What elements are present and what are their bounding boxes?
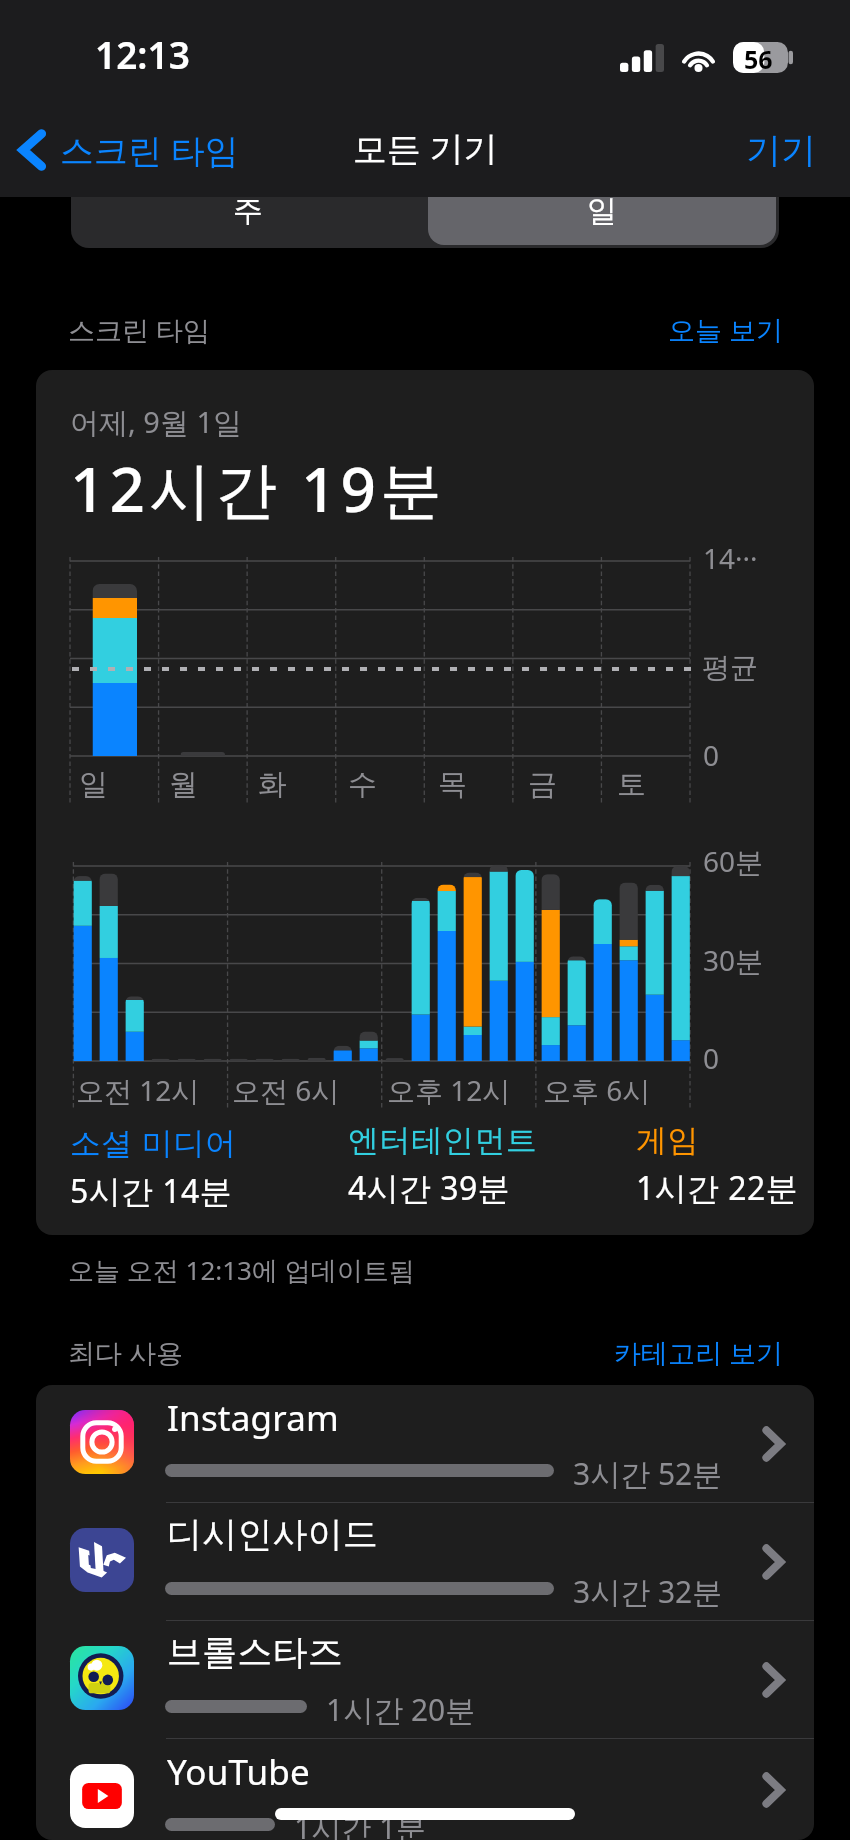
staticText: 토 [617, 766, 646, 803]
staticText: 1시간 22분 [636, 1166, 799, 1210]
staticText: 1시간 1분 [294, 1807, 427, 1840]
button[interactable]: 디시인사이드 [36, 1503, 814, 1620]
staticText: 금 [528, 766, 557, 803]
staticText: 월 [169, 766, 198, 803]
staticText: 14··· [703, 539, 758, 577]
button[interactable]: 오늘 보기 [668, 311, 784, 348]
other: 뒤로 [16, 126, 48, 174]
staticText: 오전 12시 [76, 1071, 200, 1109]
staticText: 스크린 타임 [60, 127, 239, 173]
staticText: 12시간 19분 [70, 446, 446, 531]
staticText: 일 [79, 766, 108, 803]
staticText: 수 [348, 766, 377, 803]
button[interactable]: 일 [428, 165, 776, 245]
staticText: 평균 [702, 650, 758, 685]
button[interactable]: YouTube [36, 1739, 814, 1840]
staticText: 4시간 39분 [348, 1166, 511, 1210]
staticText: 게임 [636, 1121, 700, 1160]
staticText: 디시인사이드 [167, 1512, 379, 1556]
staticText: 스크린 타임 [68, 311, 211, 348]
staticText: 어제, 9월 1일 [70, 402, 243, 442]
staticText: 엔터테인먼트 [348, 1121, 538, 1160]
staticText: 모든 기기 [353, 125, 498, 171]
staticText: 오후 12시 [387, 1071, 511, 1109]
button[interactable]: 주 [71, 162, 425, 248]
staticText: 3시간 52분 [573, 1453, 723, 1494]
staticText: Instagram [167, 1394, 339, 1442]
staticText: 화 [258, 766, 287, 803]
staticText: YouTube [167, 1748, 310, 1796]
button[interactable]: 카테고리 보기 [614, 1334, 784, 1371]
staticText: 오후 6시 [543, 1071, 651, 1109]
staticText: 30분 [703, 941, 764, 979]
staticText: 3시간 32분 [573, 1571, 723, 1612]
button[interactable]: Instagram [36, 1385, 814, 1502]
staticText: 목 [438, 766, 467, 803]
staticText: 12:13 [95, 29, 190, 79]
staticText: 최다 사용 [68, 1334, 184, 1371]
staticText: 소셜 미디어 [70, 1121, 237, 1163]
staticText: 0 [703, 1039, 720, 1077]
staticText: 오전 6시 [232, 1071, 340, 1109]
staticText: 일 [587, 192, 617, 230]
button[interactable]: 브롤스타즈 [36, 1621, 814, 1738]
staticText: 56 [744, 42, 773, 73]
button[interactable]: 뒤로 [16, 126, 239, 174]
staticText: 오늘 오전 12:13에 업데이트됨 [68, 1252, 415, 1288]
staticText: 주 [233, 192, 263, 230]
staticText: 5시간 14분 [70, 1169, 233, 1213]
staticText: 0 [703, 736, 720, 774]
staticText: 1시간 20분 [326, 1689, 476, 1730]
button[interactable]: 기기 [746, 128, 816, 172]
staticText: 브롤스타즈 [167, 1630, 343, 1674]
staticText: 60분 [703, 842, 764, 880]
